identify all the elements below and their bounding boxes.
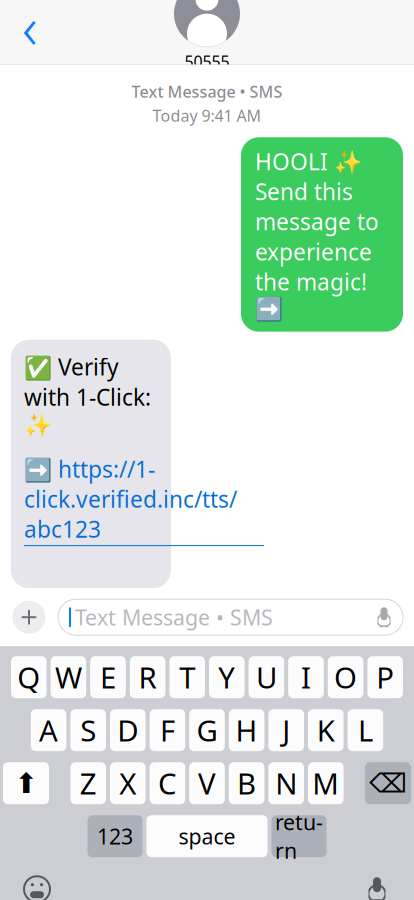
staticText: Text Message • SMS <box>131 81 282 102</box>
staticText: ➡️ https://1-click.verified.inc/tts/abc1… <box>24 454 237 544</box>
staticText: ✅ Verify with 1-Click: ✨ <box>24 352 151 438</box>
staticText: Today 9:41 AM <box>152 105 261 126</box>
button[interactable]: C <box>150 762 185 804</box>
button[interactable]: J <box>268 709 304 751</box>
button[interactable]: K <box>308 709 344 751</box>
staticText: X <box>119 764 136 803</box>
staticText: K <box>317 711 335 750</box>
button[interactable]: O <box>328 656 363 698</box>
staticText: D <box>117 711 138 750</box>
staticText: L <box>358 711 373 750</box>
button[interactable]: U <box>249 656 284 698</box>
button[interactable]: Z <box>70 762 106 804</box>
button[interactable]: ➡️ https://1-click.verified.inc/tts/abc1… <box>24 454 264 576</box>
button[interactable]: Q <box>11 656 47 698</box>
staticText: ⌫ <box>369 768 407 798</box>
button[interactable]: 123 <box>87 815 142 857</box>
staticText: space <box>178 822 235 850</box>
staticText: P <box>376 658 394 697</box>
button[interactable]: W <box>51 656 86 698</box>
staticText: B <box>237 764 256 803</box>
staticText: 50555 <box>184 51 229 72</box>
button[interactable]: S <box>70 709 106 751</box>
button[interactable]: Shift <box>3 762 49 804</box>
button[interactable]: Dictation <box>355 869 399 900</box>
staticText: R <box>139 658 157 697</box>
staticText: A <box>39 711 58 750</box>
button[interactable]: R <box>130 656 165 698</box>
staticText: S <box>80 711 96 750</box>
staticText: HOOLI ✨ Send this message to experience … <box>255 146 379 323</box>
staticText: I <box>301 658 311 697</box>
button[interactable]: E <box>90 656 126 698</box>
staticText: ⬆ <box>14 767 37 799</box>
staticText: F <box>160 711 175 750</box>
staticText: J <box>282 711 290 750</box>
staticText: W <box>55 658 82 697</box>
button[interactable]: F <box>150 709 185 751</box>
button[interactable]: V <box>189 762 225 804</box>
button[interactable]: B <box>229 762 264 804</box>
staticText: V <box>198 764 216 803</box>
button[interactable]: G <box>189 709 225 751</box>
staticText: return <box>275 808 323 865</box>
button[interactable]: Y <box>209 656 245 698</box>
button[interactable]: D <box>110 709 146 751</box>
staticText: O <box>334 658 357 697</box>
button[interactable]: L <box>348 709 383 751</box>
button[interactable]: More options <box>11 599 47 635</box>
staticText: U <box>256 658 277 697</box>
staticText: G <box>196 711 217 750</box>
staticText: M <box>312 764 339 803</box>
staticText: 123 <box>97 822 133 850</box>
button[interactable]: return <box>271 815 326 857</box>
button[interactable]: M <box>308 762 344 804</box>
staticText: Q <box>17 658 40 697</box>
button[interactable]: Back <box>8 0 52 53</box>
button[interactable]: Emoji keyboard <box>15 869 59 900</box>
button[interactable]: H <box>229 709 264 751</box>
staticText: C <box>158 764 177 803</box>
button[interactable]: space <box>146 815 267 857</box>
button[interactable]: X <box>110 762 146 804</box>
staticText: T <box>179 658 195 697</box>
staticText: E <box>100 658 116 697</box>
button[interactable]: I <box>288 656 324 698</box>
staticText: Z <box>80 764 97 803</box>
button[interactable]: A <box>31 709 66 751</box>
button[interactable]: Text Message • SMS <box>58 599 403 635</box>
button[interactable]: N <box>268 762 304 804</box>
button[interactable]: P <box>367 656 403 698</box>
staticText: H <box>236 711 258 750</box>
staticText: N <box>275 764 297 803</box>
staticText: Text Message • SMS <box>75 603 273 631</box>
button[interactable]: T <box>169 656 205 698</box>
staticText: ‹ <box>22 0 38 65</box>
button[interactable]: Delete <box>365 762 411 804</box>
staticText: Y <box>218 658 235 697</box>
